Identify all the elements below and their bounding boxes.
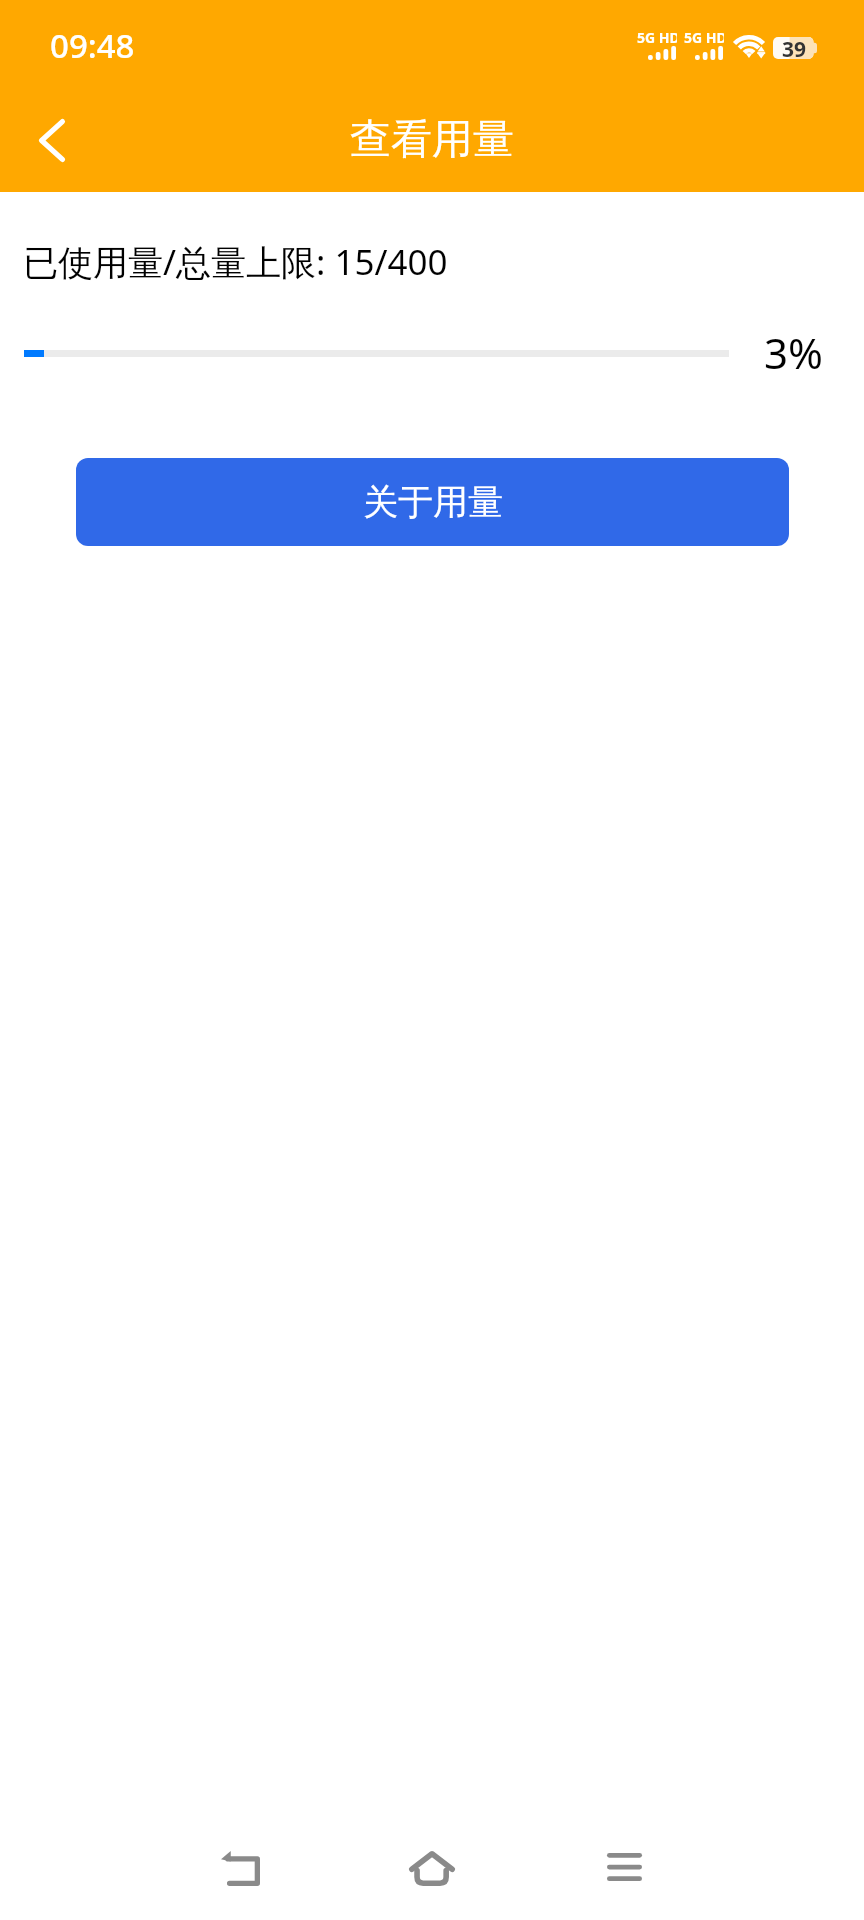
staticText: 已使用量/总量上限: 15/400	[23, 238, 448, 286]
button[interactable]: 关于用量	[76, 458, 789, 546]
staticText: 39	[782, 35, 807, 57]
button[interactable]: Home	[384, 1820, 480, 1916]
staticText: 关于用量	[363, 480, 503, 524]
button[interactable]: Back	[14, 102, 90, 178]
button[interactable]: Back	[192, 1820, 288, 1916]
staticText: 5G HD	[637, 28, 677, 47]
staticText: 3%	[764, 324, 823, 381]
staticText: 查看用量	[350, 114, 514, 166]
staticText: 09:48	[50, 23, 135, 68]
button[interactable]: Recent apps	[576, 1820, 672, 1916]
staticText: 5G HD	[684, 28, 724, 47]
